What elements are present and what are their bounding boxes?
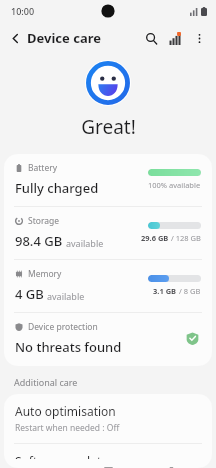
staticText: available (47, 290, 85, 302)
button[interactable]: Diagnostics (163, 26, 187, 50)
button[interactable]: Software update (4, 444, 212, 468)
staticText: Memory (28, 268, 62, 280)
staticText: Fully charged (15, 179, 99, 197)
button[interactable]: Auto optimisation (4, 394, 212, 443)
staticText: available (66, 237, 104, 249)
staticText: Device protection (28, 321, 98, 333)
staticText: / 128 GB (169, 233, 201, 243)
staticText: Restart when needed : Off (15, 422, 120, 434)
staticText: 100% available (148, 180, 201, 190)
staticText: Software update (15, 453, 109, 459)
button[interactable]: Search (139, 26, 163, 50)
staticText: Device care (27, 29, 101, 47)
staticText: Storage (28, 215, 60, 227)
staticText: 10:00 (11, 5, 35, 17)
staticText: Great! (81, 114, 136, 140)
button[interactable]: Battery (4, 154, 212, 206)
button[interactable]: Memory (4, 260, 212, 312)
staticText: / 8 GB (177, 286, 201, 296)
staticText: Battery (28, 162, 58, 174)
staticText: Additional care (14, 376, 78, 388)
other: Protected (186, 332, 199, 345)
button[interactable]: Device protection (4, 313, 212, 366)
staticText: 98.4 GB (15, 232, 63, 250)
button[interactable]: Storage (4, 207, 212, 259)
button[interactable]: More options (187, 26, 211, 50)
staticText: 29.6 GB (141, 233, 169, 243)
staticText: 3.1 GB (153, 286, 177, 296)
staticText: No threats found (15, 338, 122, 356)
staticText: Auto optimisation (15, 403, 116, 419)
button[interactable]: Back (0, 28, 26, 49)
staticText: 4 GB (15, 285, 44, 303)
